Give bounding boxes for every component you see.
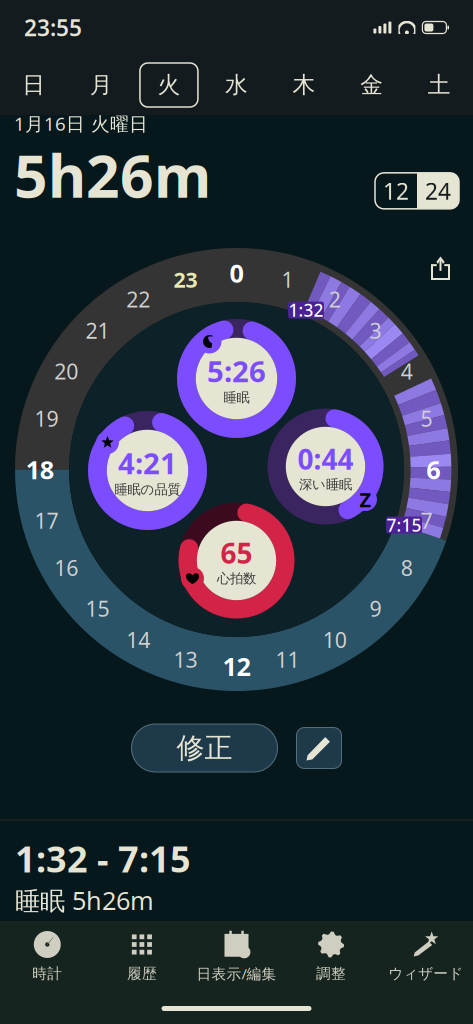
staticText: ウィザード <box>388 964 463 982</box>
staticText: 水 <box>225 71 248 99</box>
button[interactable]: 月 <box>68 55 135 115</box>
staticText: 8 <box>401 554 413 582</box>
staticText: 0 <box>229 256 243 290</box>
button[interactable]: 12 <box>375 173 459 214</box>
button[interactable]: 水 <box>203 55 270 115</box>
staticText: 65 <box>220 534 252 571</box>
staticText: 18 <box>26 453 54 486</box>
staticText: 火 <box>157 71 180 99</box>
staticText: 4 <box>401 357 413 385</box>
staticText: 0:44 <box>297 440 353 477</box>
staticText: 17 <box>34 506 58 534</box>
staticText: 金 <box>360 71 383 99</box>
staticText: 12 <box>222 649 250 683</box>
button[interactable]: 木 <box>270 55 338 115</box>
button[interactable]: 調整 <box>284 921 378 993</box>
button[interactable]: ウィザード <box>378 921 473 993</box>
staticText: 深い睡眠 <box>299 476 352 493</box>
staticText: 13 <box>174 645 198 674</box>
button[interactable]: 日 <box>0 55 68 115</box>
staticText: 14 <box>126 626 150 654</box>
button[interactable]: 日表示/編集 <box>189 921 284 993</box>
staticText: 23:55 <box>24 12 82 42</box>
button[interactable]: 共有 <box>423 248 458 288</box>
staticText: 20 <box>54 357 78 385</box>
button[interactable]: 履歴 <box>95 921 189 993</box>
staticText: 1月16日 火曜日 <box>14 111 148 136</box>
staticText: 6 <box>426 453 440 486</box>
staticText: 11 <box>275 645 299 674</box>
button[interactable]: 編集 <box>296 727 341 768</box>
staticText: 21 <box>85 316 109 345</box>
staticText: 心拍数 <box>217 570 256 587</box>
staticText: 1:32 <box>288 298 323 321</box>
staticText: 調整 <box>316 964 346 982</box>
staticText: 睡眠の品質 <box>114 481 180 498</box>
button[interactable]: 時計 <box>0 921 95 993</box>
staticText: 日 <box>22 71 45 99</box>
staticText: 7:15 <box>386 513 421 536</box>
staticText: 時計 <box>32 964 62 982</box>
staticText: 16 <box>54 554 78 582</box>
staticText: 睡眠 5h26m <box>15 883 154 917</box>
staticText: 23 <box>174 265 198 294</box>
staticText: 3 <box>370 316 382 345</box>
button[interactable]: 金 <box>338 55 405 115</box>
staticText: 修正 <box>176 731 232 765</box>
staticText: 12 <box>383 176 409 206</box>
staticText: 1:32 - 7:15 <box>15 835 191 882</box>
staticText: 履歴 <box>127 964 157 982</box>
button[interactable]: 火 <box>135 55 203 115</box>
staticText: 4:21 <box>118 443 177 482</box>
staticText: 10 <box>323 626 347 654</box>
staticText: 5h26m <box>14 136 211 214</box>
staticText: 1 <box>281 265 293 294</box>
staticText: 19 <box>34 404 58 433</box>
staticText: 日表示/編集 <box>196 964 276 983</box>
staticText: 月 <box>90 71 113 99</box>
button[interactable]: 土 <box>405 55 473 115</box>
staticText: 2 <box>329 285 341 313</box>
staticText: 9 <box>370 594 382 623</box>
staticText: 土 <box>428 71 451 99</box>
staticText: 木 <box>293 71 316 99</box>
staticText: 睡眠 <box>223 389 249 406</box>
button[interactable]: 修正 <box>131 724 277 772</box>
staticText: 15 <box>85 594 109 623</box>
staticText: 5 <box>420 404 432 433</box>
staticText: Z <box>359 486 371 513</box>
staticText: 5:26 <box>207 351 266 390</box>
staticText: 22 <box>126 285 150 313</box>
staticText: 24 <box>425 176 451 206</box>
staticText: 7 <box>420 506 432 534</box>
